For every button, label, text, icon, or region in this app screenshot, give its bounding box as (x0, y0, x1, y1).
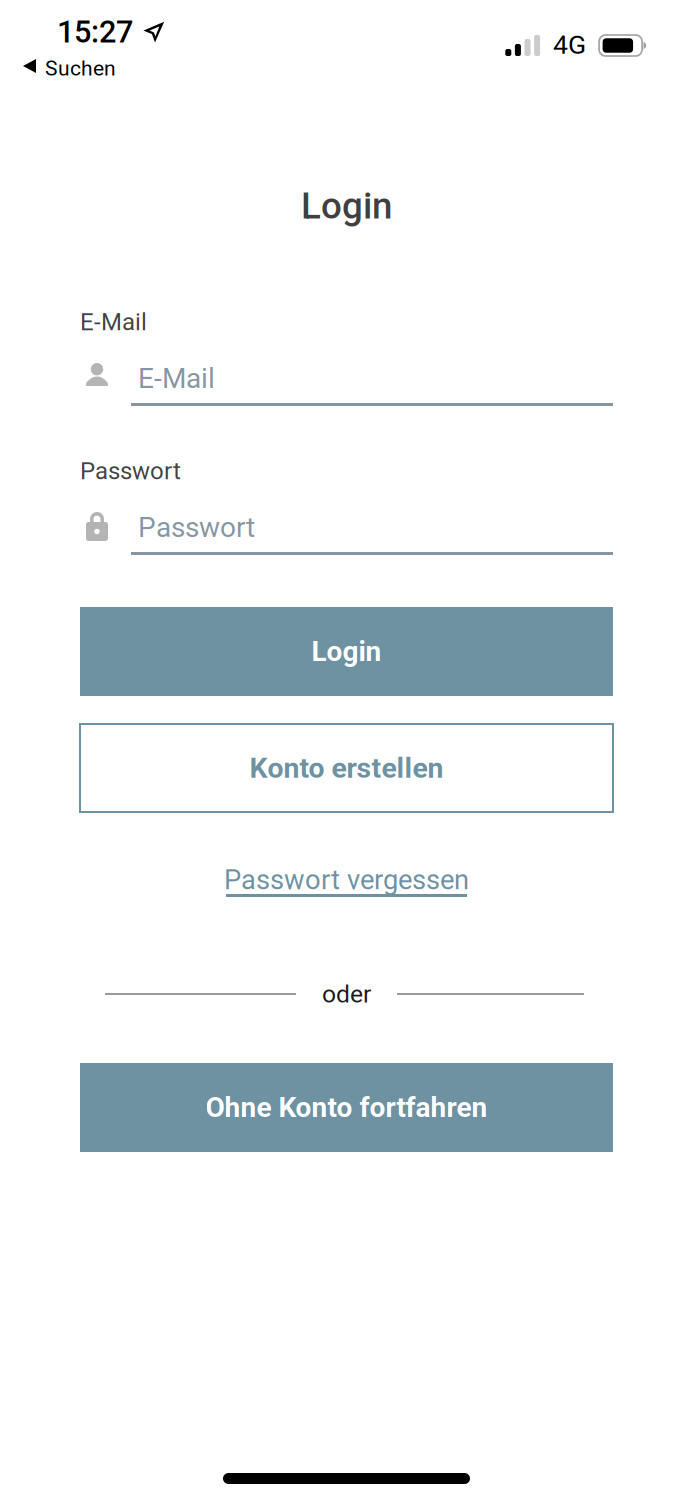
staticText: E-Mail (138, 362, 215, 395)
button[interactable]: Konto erstellen (80, 724, 613, 812)
staticText: 4G (553, 29, 586, 60)
button[interactable]: Ohne Konto fortfahren (80, 1063, 613, 1152)
staticText: Login (301, 184, 392, 227)
staticText: E-Mail (80, 308, 147, 336)
staticText: Login (311, 635, 381, 668)
staticText: 15:27 (57, 14, 133, 50)
button[interactable]: E-Mail (80, 362, 613, 406)
staticText: Suchen (45, 56, 116, 81)
staticText: Passwort (80, 457, 181, 485)
staticText: Passwort (138, 511, 255, 544)
button[interactable]: Passwort (80, 511, 613, 555)
button[interactable]: Passwort vergessen (186, 864, 506, 904)
button[interactable]: Login (80, 607, 613, 696)
staticText: Passwort vergessen (224, 864, 469, 896)
staticText: oder (322, 979, 371, 1008)
staticText: Ohne Konto fortfahren (205, 1091, 487, 1124)
staticText: Konto erstellen (249, 751, 443, 785)
button[interactable]: Suchen (23, 56, 116, 76)
